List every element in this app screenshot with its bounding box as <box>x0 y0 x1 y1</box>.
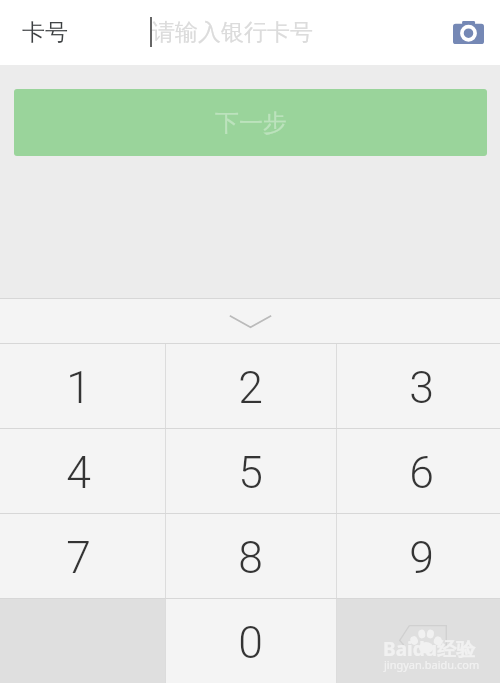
staticText: 7 <box>66 532 91 584</box>
button[interactable]: Hide keyboard <box>0 299 500 343</box>
button[interactable]: 7 <box>0 514 165 598</box>
button[interactable]: 6 <box>337 429 500 513</box>
button[interactable]: 1 <box>0 344 165 428</box>
staticText: 8 <box>238 532 263 584</box>
button[interactable]: Scan card with camera <box>446 10 490 54</box>
staticText: jingyan.baidu.com <box>384 657 480 672</box>
button[interactable]: 3 <box>337 344 500 428</box>
button[interactable]: 5 <box>166 429 336 513</box>
button[interactable]: 9 <box>337 514 500 598</box>
staticText: 0 <box>238 617 263 669</box>
staticText: 9 <box>409 532 434 584</box>
button[interactable]: Delete <box>337 599 500 683</box>
button[interactable]: 下一步 <box>14 89 487 156</box>
button[interactable]: 8 <box>166 514 336 598</box>
staticText: 4 <box>66 447 91 499</box>
staticText: 请输入银行卡号 <box>152 18 313 47</box>
staticText: 2 <box>238 362 263 414</box>
staticText: 6 <box>409 447 434 499</box>
staticText: 卡号 <box>22 18 68 47</box>
staticText: 5 <box>238 447 263 499</box>
staticText: Baidu经验 <box>383 636 476 662</box>
button[interactable]: 0 <box>166 599 336 683</box>
staticText: 下一步 <box>215 108 287 138</box>
staticText: 3 <box>409 362 434 414</box>
button[interactable]: 2 <box>166 344 336 428</box>
staticText: 1 <box>66 362 91 414</box>
button[interactable]: 4 <box>0 429 165 513</box>
